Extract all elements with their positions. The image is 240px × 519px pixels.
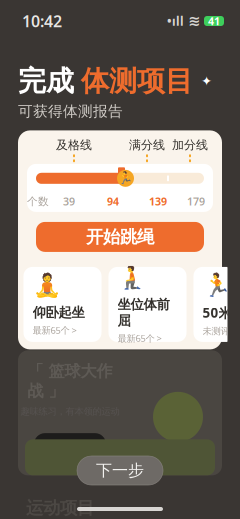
staticText: 139: [149, 194, 167, 208]
staticText: 下一步: [96, 461, 144, 480]
staticText: ≋: [188, 13, 200, 29]
staticText: 仰卧起坐: [32, 304, 84, 321]
staticText: 94: [107, 194, 119, 208]
staticText: 加分线: [172, 137, 208, 152]
button[interactable]: 下一步: [77, 456, 163, 485]
staticText: 未测评 >: [202, 324, 236, 337]
staticText: ✦: [201, 74, 212, 89]
staticText: 39: [63, 194, 75, 208]
staticText: 坐位体前屈: [117, 296, 169, 329]
staticText: 🏃: [202, 272, 230, 298]
button[interactable]: 🧎: [108, 267, 186, 342]
staticText: 「 篮球大作战 」: [27, 361, 112, 401]
staticText: 及格线: [56, 137, 92, 152]
staticText: 运动项目: [26, 497, 94, 519]
staticText: 满分线: [129, 137, 165, 152]
staticText: 最新65个 >: [32, 324, 76, 336]
button[interactable]: 开始跳绳: [36, 222, 204, 252]
staticText: 趣味练习，有本领的运动: [20, 406, 119, 417]
staticText: 完成: [18, 64, 74, 98]
staticText: 开始跳绳: [86, 226, 154, 248]
staticText: 个数: [27, 195, 49, 208]
staticText: 可获得体测报告: [18, 102, 123, 120]
staticText: 179: [187, 194, 205, 208]
staticText: •ıll: [167, 13, 184, 29]
staticText: 50米跑: [202, 304, 240, 321]
staticText: 🧎: [117, 264, 145, 290]
staticText: 10:42: [22, 10, 62, 32]
staticText: 🧘: [32, 273, 60, 298]
staticText: 体测项目: [81, 64, 193, 98]
staticText: 🏃: [118, 171, 133, 185]
button[interactable]: 🧘: [23, 267, 101, 342]
button[interactable]: 🏃: [193, 267, 240, 342]
staticText: 41: [208, 14, 220, 28]
staticText: 最新65个 >: [117, 332, 161, 344]
